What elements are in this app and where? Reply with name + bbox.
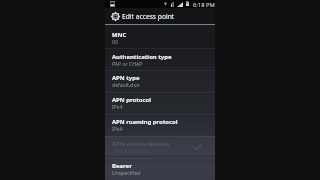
staticText: 00 (112, 39, 118, 46)
staticText: Unspecified (112, 170, 141, 177)
button[interactable]: MNC (105, 27, 215, 49)
staticText: Bearer (112, 162, 132, 170)
staticText: APN type (112, 74, 140, 82)
staticText: APN enable/disable (112, 140, 170, 148)
button[interactable]: APN type (105, 70, 215, 92)
button[interactable]: Bearer (105, 158, 215, 180)
staticText: default,dun (112, 82, 140, 89)
staticText: Edit access point (122, 12, 175, 21)
other: APN enabled (193, 144, 202, 150)
staticText: Authentication type (112, 53, 172, 61)
staticText: PAP or CHAP (112, 61, 143, 68)
staticText: MNC (112, 31, 127, 39)
button[interactable]: APN enable/disable (105, 136, 215, 158)
button[interactable]: APN roaming protocol (105, 114, 215, 136)
other: Access point settings (111, 12, 120, 21)
staticText: APN protocol (112, 96, 151, 104)
staticText: APN roaming protocol (112, 118, 178, 126)
staticText: 6:18 PM (193, 1, 215, 9)
button[interactable]: Access point settings (105, 8, 179, 24)
button[interactable]: Authentication type (105, 49, 215, 71)
button[interactable]: APN protocol (105, 92, 215, 114)
staticText: IPv4 (112, 126, 123, 133)
staticText: IPv4 (112, 104, 123, 111)
